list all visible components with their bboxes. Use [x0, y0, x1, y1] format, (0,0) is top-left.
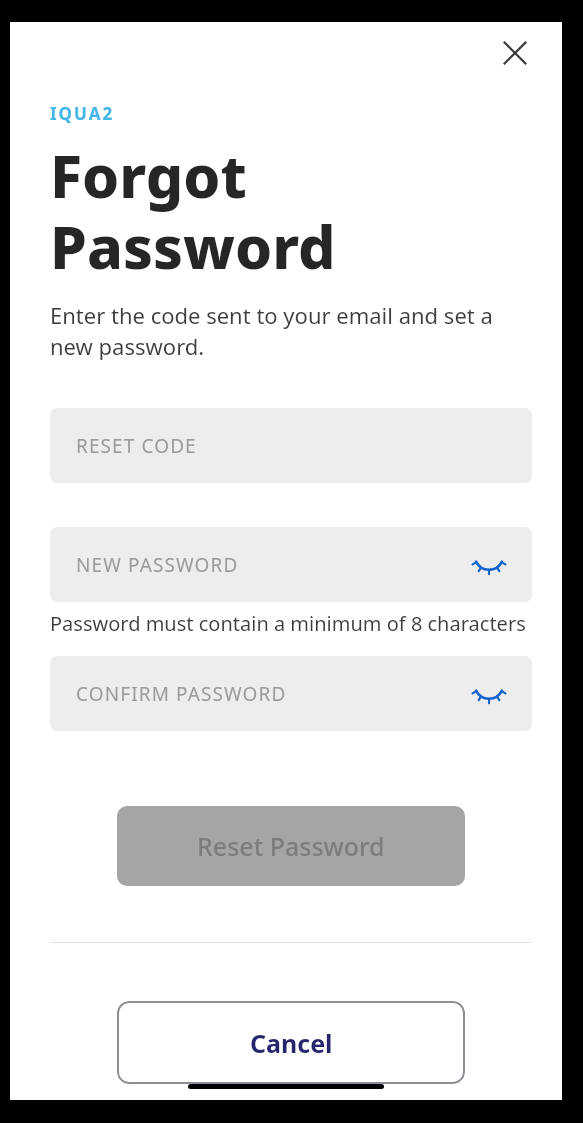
- staticText: NEW PASSWORD: [76, 552, 468, 578]
- button[interactable]: Show confirm password: [468, 673, 510, 715]
- button[interactable]: NEW PASSWORD: [50, 527, 532, 602]
- button[interactable]: CONFIRM PASSWORD: [50, 656, 532, 731]
- staticText: Reset Password: [197, 829, 385, 863]
- staticText: Enter the code sent to your email and se…: [50, 300, 502, 362]
- staticText: Password must contain a minimum of 8 cha…: [50, 610, 526, 637]
- button[interactable]: Close: [492, 30, 538, 76]
- button[interactable]: Cancel: [117, 1001, 465, 1084]
- staticText: Forgot Password: [50, 135, 336, 286]
- staticText: CONFIRM PASSWORD: [76, 681, 468, 707]
- button[interactable]: RESET CODE: [50, 408, 532, 483]
- staticText: Cancel: [250, 1026, 333, 1060]
- button[interactable]: Reset Password: [117, 806, 465, 886]
- staticText: RESET CODE: [76, 433, 510, 459]
- staticText: IQUA2: [50, 102, 115, 125]
- button[interactable]: Show new password: [468, 544, 510, 586]
